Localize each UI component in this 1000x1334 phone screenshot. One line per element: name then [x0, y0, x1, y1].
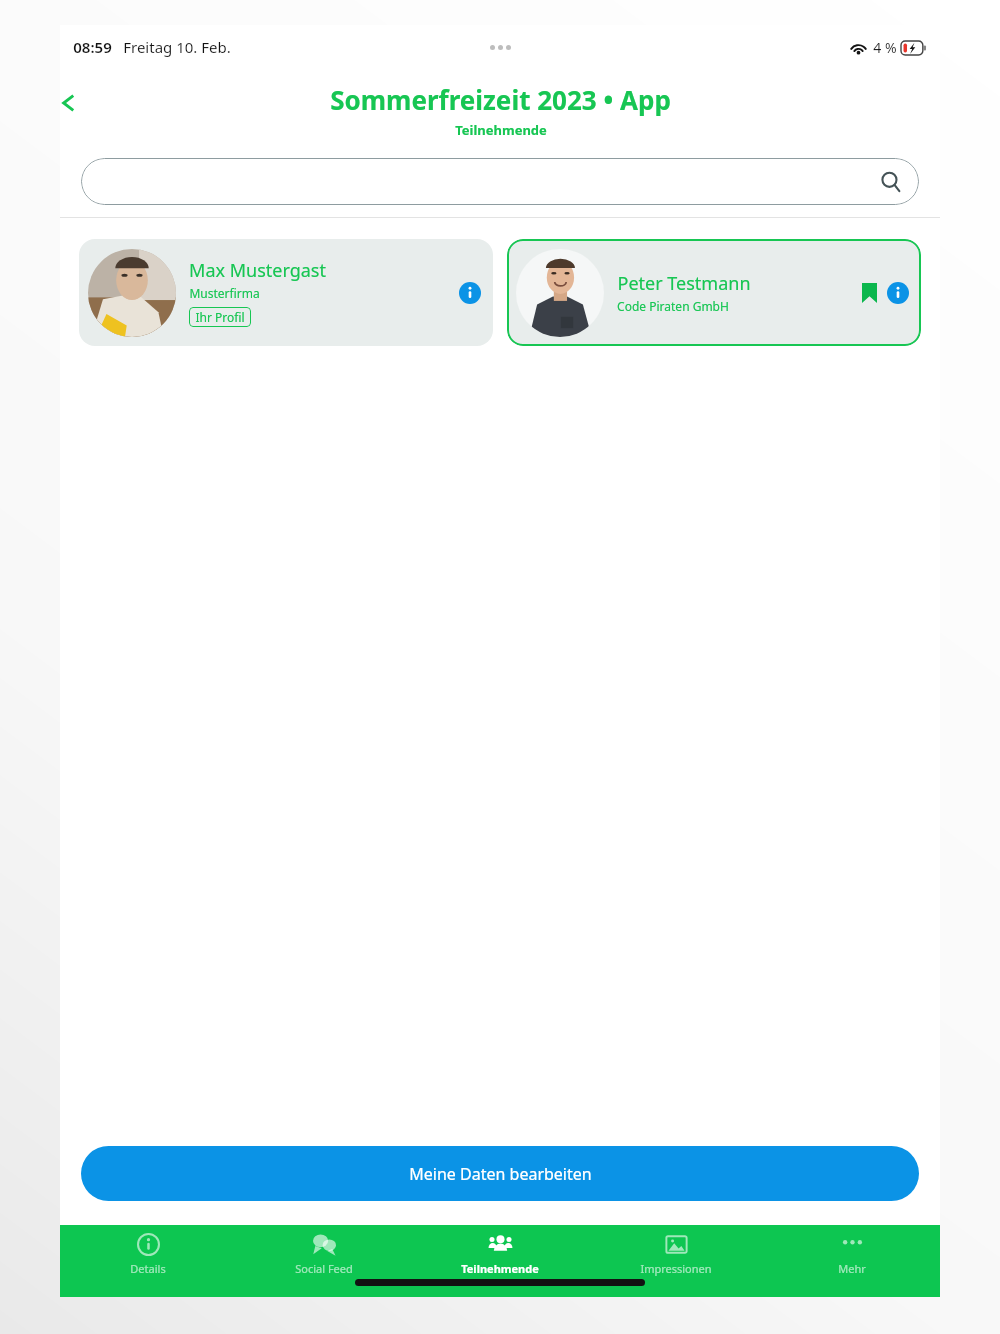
button[interactable]: Info [456, 279, 484, 307]
button[interactable]: Details [60, 1233, 236, 1276]
staticText: Sommerfreizeit 2023 • App [330, 82, 671, 117]
button[interactable]: Social Feed [236, 1233, 412, 1276]
button[interactable]: Lesezeichen [857, 281, 881, 305]
button[interactable]: Max Mustergast [79, 239, 493, 346]
staticText: Social Feed [295, 1261, 353, 1276]
staticText: Teilnehmende [461, 1261, 539, 1276]
button[interactable]: Meine Daten bearbeiten [81, 1146, 919, 1201]
staticText: Impressionen [640, 1261, 712, 1276]
staticText: Peter Testmann [617, 271, 751, 296]
staticText: Ihr Profil [195, 309, 245, 325]
staticText: Teilnehmende [455, 121, 547, 139]
staticText: Code Piraten GmbH [617, 298, 729, 314]
button[interactable]: Back [44, 79, 92, 127]
staticText: Max Mustergast [189, 258, 326, 283]
staticText: 08:59 [73, 37, 112, 57]
button[interactable]: Suche [81, 158, 919, 205]
button[interactable]: Info [884, 279, 912, 307]
staticText: Mehr [838, 1261, 866, 1276]
button[interactable]: Ihr Profil [195, 309, 245, 325]
button[interactable]: Impressionen [588, 1233, 764, 1276]
button[interactable]: Teilnehmende [412, 1233, 588, 1276]
staticText: Freitag 10. Feb. [123, 37, 231, 57]
staticText: 4 % [873, 38, 897, 57]
button[interactable]: Mehr [764, 1233, 940, 1276]
staticText: Details [130, 1261, 166, 1276]
staticText: Musterfirma [189, 285, 260, 301]
button[interactable]: Peter Testmann [507, 239, 921, 346]
staticText: Meine Daten bearbeiten [409, 1163, 592, 1185]
